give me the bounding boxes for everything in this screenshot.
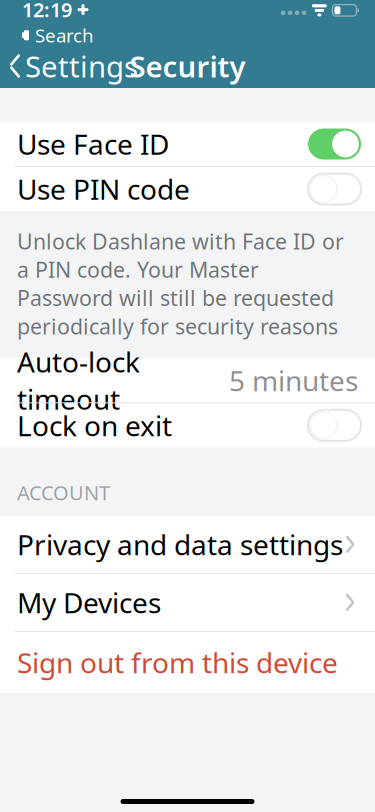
button[interactable]: Use Face ID [0, 122, 375, 166]
button[interactable]: Search [22, 23, 94, 48]
staticText: Security [129, 46, 245, 85]
button[interactable]: Auto-lock timeout [0, 358, 375, 402]
staticText: Auto-lock timeout [17, 343, 140, 417]
staticText: ACCOUNT [17, 479, 110, 506]
staticText: My Devices [17, 584, 161, 621]
button[interactable]: Privacy and data settings [0, 516, 375, 573]
staticText: Privacy and data settings [17, 526, 343, 563]
staticText: Unlock Dashlane with Face ID or a PIN co… [17, 227, 344, 340]
staticText: Use Face ID [17, 125, 169, 163]
staticText: Sign out from this device [17, 644, 338, 681]
staticText: Lock on exit [17, 407, 172, 444]
staticText: 12:19 [22, 0, 72, 23]
staticText: Search [35, 23, 94, 48]
button[interactable]: Settings [0, 42, 138, 89]
staticText: Use PIN code [17, 170, 190, 208]
staticText: Settings [25, 46, 138, 85]
button[interactable]: Use PIN code [0, 167, 375, 211]
button[interactable]: My Devices [0, 574, 375, 631]
button[interactable]: Lock on exit [0, 403, 375, 447]
button[interactable]: Sign out from this device [0, 632, 375, 693]
staticText: 5 minutes [229, 362, 358, 399]
